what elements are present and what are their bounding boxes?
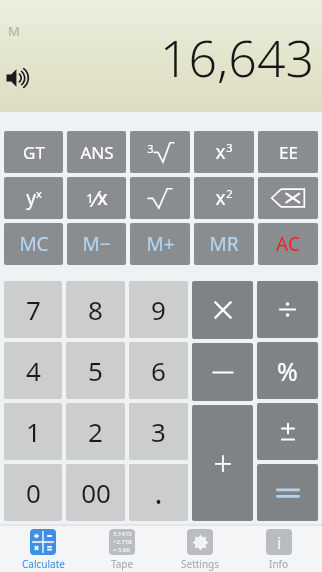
button[interactable]: Calculate (8, 525, 78, 572)
button[interactable]: 9 (129, 281, 188, 338)
staticText: MC (19, 231, 49, 257)
staticText: i (277, 531, 282, 554)
button[interactable]: Plus minus sign (257, 403, 318, 460)
button[interactable]: % (257, 342, 318, 399)
button[interactable]: GT (4, 131, 63, 173)
button[interactable]: 3.1415 (87, 525, 157, 572)
staticText: 16,643 (160, 24, 314, 92)
staticText: 8 (88, 292, 103, 327)
button[interactable]: . (129, 464, 188, 521)
button[interactable]: Toggle sound (6, 67, 32, 89)
staticText: M (8, 22, 20, 40)
button[interactable]: Settings (165, 525, 235, 572)
staticText: x (97, 185, 108, 211)
staticText: 0 (26, 475, 41, 510)
button[interactable]: M+ (130, 223, 190, 265)
button[interactable]: 2 (66, 403, 125, 460)
staticText: 3.1415 (113, 530, 132, 538)
button[interactable]: 0 (4, 464, 62, 521)
staticText: AC (276, 231, 300, 257)
button[interactable]: 5 (66, 342, 125, 399)
staticText: 2 (88, 414, 103, 449)
button[interactable]: i (244, 525, 314, 572)
staticText: Tape (111, 557, 134, 571)
button[interactable]: Divide (257, 281, 318, 338)
staticText: x (215, 139, 226, 165)
staticText: GT (23, 141, 45, 164)
button[interactable]: Backspace (130, 131, 190, 173)
staticText: 3 (151, 414, 166, 449)
button[interactable]: Subtract (192, 343, 253, 401)
staticText: M− (82, 231, 111, 257)
staticText: 00 (81, 475, 111, 510)
staticText: x (36, 186, 42, 201)
staticText: 7 (26, 292, 41, 327)
staticText: 3 (147, 141, 154, 156)
staticText: +2.718 (113, 538, 132, 546)
staticText: 4 (26, 353, 41, 388)
staticText: + (213, 440, 233, 486)
staticText: 3 (226, 140, 233, 155)
staticText: % (277, 354, 298, 388)
staticText: EE (279, 141, 298, 164)
button[interactable]: 1 (4, 403, 62, 460)
button[interactable]: 00 (66, 464, 125, 521)
button[interactable]: Backspace (67, 177, 126, 219)
button[interactable]: 6 (129, 342, 188, 399)
staticText: 1 (26, 414, 41, 449)
staticText: 2 (226, 186, 233, 201)
staticText: MR (209, 231, 239, 257)
button[interactable]: Backspace (4, 177, 63, 219)
button[interactable]: Backspace (130, 177, 190, 219)
button[interactable]: Add (192, 405, 253, 521)
staticText: 6 (151, 353, 166, 388)
button[interactable]: MC (4, 223, 63, 265)
staticText: 5 (88, 353, 103, 388)
button[interactable]: Backspace (258, 177, 318, 219)
staticText: ANS (80, 141, 114, 164)
staticText: Calculate (22, 557, 65, 571)
button[interactable]: Backspace (194, 177, 254, 219)
button[interactable]: Multiply (192, 281, 253, 339)
button[interactable]: 3 (129, 403, 188, 460)
button[interactable]: 4 (4, 342, 62, 399)
button[interactable]: M− (67, 223, 126, 265)
staticText: Info (269, 557, 289, 571)
button[interactable]: Backspace (194, 131, 254, 173)
staticText: 9 (151, 292, 166, 327)
staticText: . (154, 472, 163, 513)
button[interactable]: MR (194, 223, 254, 265)
button[interactable]: 8 (66, 281, 125, 338)
staticText: 1 (86, 189, 94, 207)
button[interactable]: EE (258, 131, 318, 173)
staticText: ⁄ (94, 183, 97, 213)
staticText: = 5.86 (113, 546, 130, 554)
staticText: M+ (146, 231, 175, 257)
staticText: y (26, 185, 36, 211)
button[interactable]: AC (258, 223, 318, 265)
staticText: Settings (181, 557, 220, 571)
button[interactable]: ANS (67, 131, 126, 173)
button[interactable]: Equals (257, 464, 318, 521)
button[interactable]: 7 (4, 281, 62, 338)
staticText: x (215, 185, 226, 211)
